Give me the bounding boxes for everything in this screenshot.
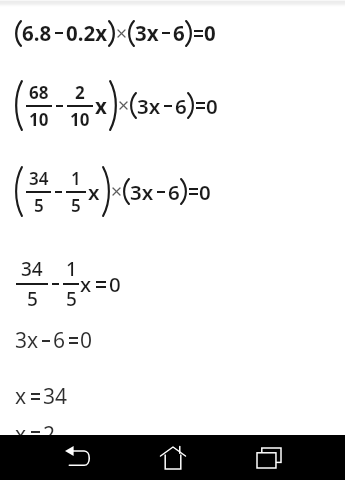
staticText: 6 — [173, 19, 185, 47]
staticText: 0 — [109, 270, 121, 298]
staticText: x — [15, 420, 27, 449]
staticText: 3x — [15, 326, 39, 355]
staticText: 68 — [29, 81, 49, 104]
button[interactable]: Back — [53, 435, 101, 480]
staticText: 3x — [137, 92, 161, 120]
staticText: x — [80, 270, 92, 298]
staticText: 2 — [75, 81, 85, 104]
button[interactable]: Home — [149, 435, 197, 480]
staticText: x — [95, 92, 107, 120]
staticText: 5 — [34, 194, 44, 217]
staticText: 2 — [43, 420, 56, 449]
staticText: 5 — [27, 286, 38, 312]
staticText: 34 — [43, 382, 68, 411]
staticText: x — [88, 178, 100, 206]
staticText: 0.2x — [66, 19, 108, 47]
staticText: x — [15, 382, 27, 411]
staticText: 6.8 — [22, 19, 52, 47]
staticText: 1 — [66, 256, 77, 282]
staticText: 34 — [21, 256, 43, 282]
staticText: 10 — [29, 108, 49, 131]
staticText: 0 — [204, 19, 216, 47]
staticText: 34 — [29, 167, 49, 190]
staticText: 5 — [66, 286, 77, 312]
staticText: 0 — [199, 178, 211, 206]
staticText: 6 — [175, 92, 187, 120]
staticText: 6 — [53, 326, 66, 355]
staticText: 3x — [135, 19, 159, 47]
button[interactable]: Recent apps — [245, 435, 293, 480]
staticText: 0 — [80, 326, 93, 355]
staticText: 1 — [71, 167, 81, 190]
staticText: 6 — [168, 178, 180, 206]
staticText: 0 — [206, 92, 218, 120]
staticText: 3x — [130, 178, 154, 206]
staticText: 10 — [70, 108, 90, 131]
staticText: 5 — [71, 194, 81, 217]
